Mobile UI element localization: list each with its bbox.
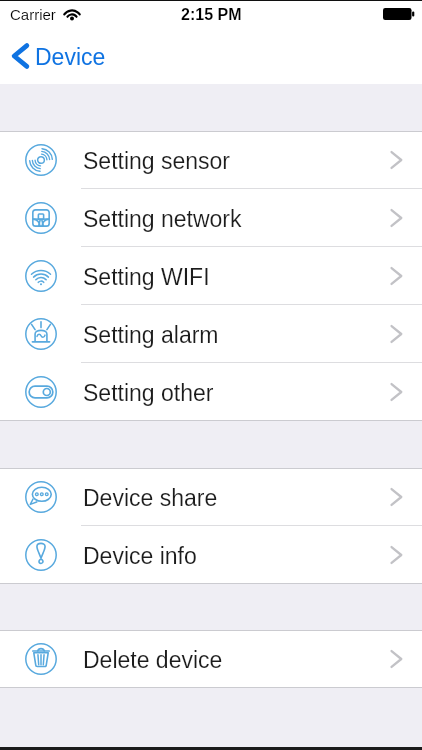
button[interactable]: Delete device xyxy=(0,630,422,688)
button[interactable]: Setting other xyxy=(0,363,422,421)
staticText: Setting sensor xyxy=(83,148,231,174)
staticText: Device share xyxy=(83,485,218,511)
button[interactable]: Setting network xyxy=(0,189,422,247)
staticText: Setting network xyxy=(83,206,242,232)
staticText: Setting WIFI xyxy=(83,264,210,290)
other: Delete device xyxy=(25,643,57,675)
button[interactable]: Device info xyxy=(0,526,422,584)
staticText: Delete device xyxy=(83,647,223,673)
other: Device info xyxy=(25,539,57,571)
button[interactable]: Setting sensor xyxy=(0,131,422,189)
other: Setting other xyxy=(25,376,57,408)
staticText: Carrier xyxy=(10,6,56,23)
other: Setting WIFI xyxy=(25,260,57,292)
other: Setting network xyxy=(25,202,57,234)
other: Device share xyxy=(25,481,57,513)
staticText: Setting alarm xyxy=(83,322,219,348)
staticText: Device xyxy=(35,44,106,70)
staticText: Device info xyxy=(83,543,197,569)
button[interactable]: Setting WIFI xyxy=(0,247,422,305)
staticText: Setting other xyxy=(83,380,214,406)
other: Setting alarm xyxy=(25,318,57,350)
staticText: 2:15 PM xyxy=(181,6,242,24)
other: Setting sensor xyxy=(25,144,57,176)
button[interactable]: Device xyxy=(0,36,116,76)
button[interactable]: Setting alarm xyxy=(0,305,422,363)
button[interactable]: Device share xyxy=(0,468,422,526)
